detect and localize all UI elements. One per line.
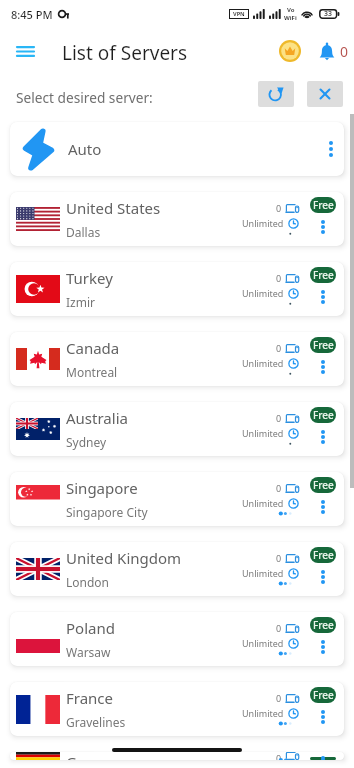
- button[interactable]: France: [10, 682, 344, 736]
- staticText: Singapore: [66, 478, 138, 498]
- staticText: Free: [313, 268, 334, 282]
- staticText: 0: [340, 42, 349, 61]
- staticText: Unlimited: [242, 217, 284, 229]
- button[interactable]: United States: [10, 192, 344, 246]
- staticText: 0: [276, 752, 282, 760]
- staticText: United Kingdom: [66, 548, 182, 568]
- staticText: 0: [276, 272, 282, 284]
- staticText: Free: [313, 338, 334, 352]
- button[interactable]: Notifications: [319, 38, 349, 65]
- staticText: Unlimited: [242, 637, 284, 649]
- staticText: Canada: [66, 338, 120, 358]
- button[interactable]: More options: [306, 430, 340, 456]
- staticText: List of Servers: [62, 40, 188, 66]
- staticText: 0: [276, 622, 282, 634]
- staticText: Free: [313, 408, 334, 422]
- staticText: London: [66, 574, 110, 590]
- staticText: Turkey: [66, 268, 113, 288]
- staticText: Gravelines: [66, 714, 126, 730]
- staticText: United States: [66, 198, 161, 218]
- staticText: France: [66, 688, 114, 708]
- button[interactable]: More options: [306, 710, 340, 736]
- button[interactable]: Premium: [275, 36, 305, 66]
- staticText: Auto: [68, 139, 102, 159]
- button[interactable]: Close: [307, 81, 343, 107]
- staticText: Free: [313, 478, 334, 492]
- staticText: Australia: [66, 408, 128, 428]
- staticText: 0: [276, 552, 282, 564]
- staticText: Unlimited: [242, 287, 284, 299]
- staticText: Unlimited: [242, 427, 284, 439]
- staticText: 0: [276, 692, 282, 704]
- staticText: 0: [276, 342, 282, 354]
- staticText: Dallas: [66, 224, 101, 240]
- button[interactable]: More options: [306, 360, 340, 386]
- staticText: Izmir: [66, 294, 95, 310]
- staticText: Poland: [66, 618, 115, 638]
- staticText: 0: [276, 202, 282, 214]
- button[interactable]: Auto: [10, 122, 344, 176]
- button[interactable]: More options: [306, 220, 340, 246]
- staticText: Unlimited: [242, 497, 284, 509]
- staticText: Select desired server:: [16, 88, 153, 107]
- staticText: Free: [313, 198, 334, 212]
- staticText: VPN: [233, 10, 245, 18]
- button[interactable]: Germany: [10, 752, 344, 760]
- staticText: Vo: [287, 6, 295, 14]
- staticText: Montreal: [66, 364, 118, 380]
- staticText: 0: [276, 412, 282, 424]
- staticText: Free: [313, 618, 334, 632]
- staticText: Unlimited: [242, 567, 284, 579]
- staticText: Unlimited: [242, 357, 284, 369]
- staticText: WiFi: [284, 14, 297, 22]
- button[interactable]: Refresh: [258, 81, 294, 107]
- button[interactable]: Turkey: [10, 262, 344, 316]
- button[interactable]: United Kingdom: [10, 542, 344, 596]
- button[interactable]: Canada: [10, 332, 344, 386]
- button[interactable]: Menu: [8, 34, 42, 68]
- staticText: Unlimited: [242, 707, 284, 719]
- staticText: Germany: [66, 752, 131, 760]
- button[interactable]: Australia: [10, 402, 344, 456]
- staticText: Free: [313, 757, 334, 760]
- staticText: Free: [313, 548, 334, 562]
- staticText: Singapore City: [66, 504, 148, 520]
- staticText: 0: [276, 482, 282, 494]
- staticText: 8:45 PM: [11, 7, 53, 22]
- staticText: 33: [324, 9, 333, 19]
- button[interactable]: More options: [318, 122, 344, 176]
- staticText: Sydney: [66, 434, 107, 450]
- button[interactable]: More options: [306, 570, 340, 596]
- button[interactable]: Poland: [10, 612, 344, 666]
- staticText: Warsaw: [66, 644, 111, 660]
- button[interactable]: More options: [306, 290, 340, 316]
- staticText: Free: [313, 688, 334, 702]
- button[interactable]: Singapore: [10, 472, 344, 526]
- button[interactable]: More options: [306, 500, 340, 526]
- button[interactable]: More options: [306, 640, 340, 666]
